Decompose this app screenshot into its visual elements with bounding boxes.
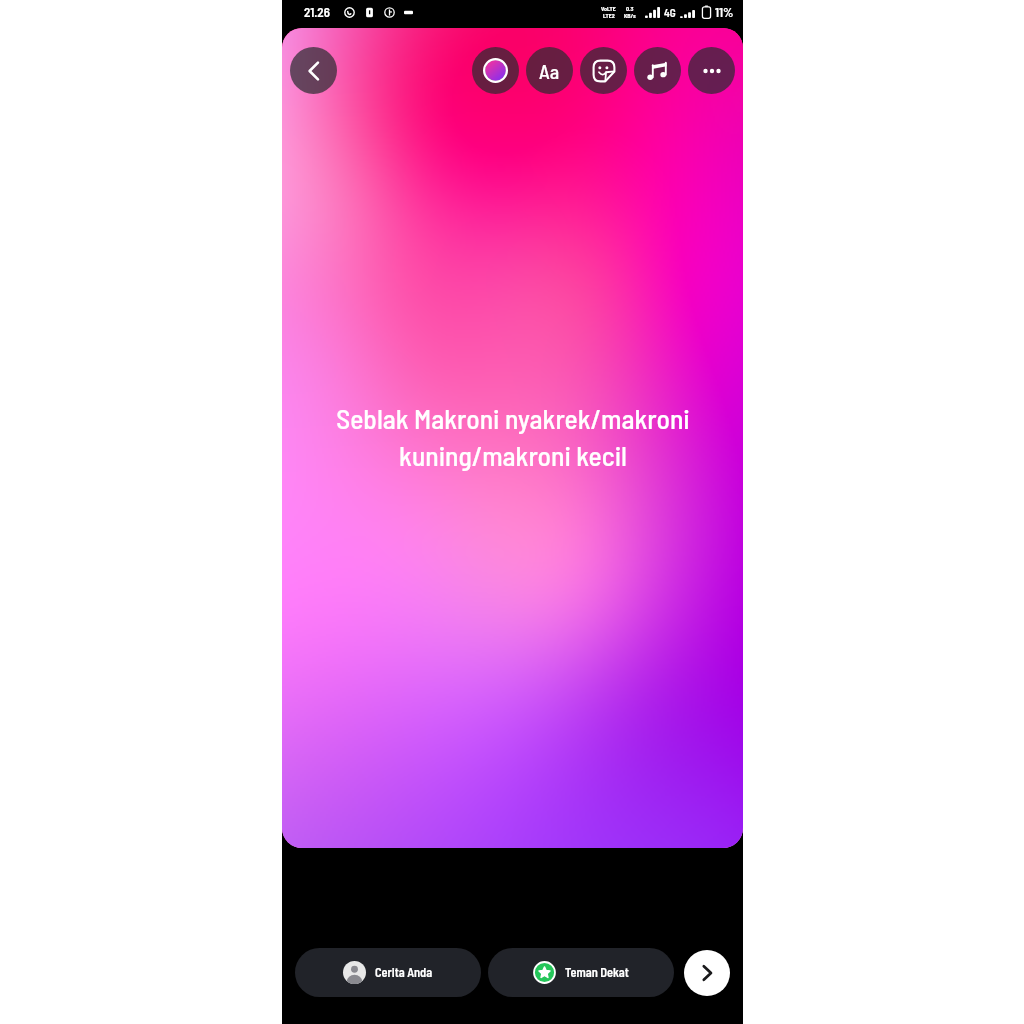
staticText: Aa bbox=[539, 59, 560, 83]
button[interactable]: Back bbox=[290, 47, 337, 94]
staticText: LTE2 bbox=[603, 12, 615, 19]
staticText: Seblak Makroni nyakrek/makroni kuning/ma… bbox=[313, 401, 713, 471]
button[interactable]: Sticker bbox=[580, 47, 627, 94]
button[interactable]: Text bbox=[526, 47, 573, 94]
staticText: Teman Dekat bbox=[565, 965, 629, 980]
button[interactable]: Next bbox=[684, 950, 730, 996]
staticText: 21.26 bbox=[304, 4, 330, 20]
button[interactable]: More options bbox=[688, 47, 735, 94]
button[interactable]: Cerita Anda bbox=[295, 948, 481, 997]
button[interactable]: Color picker bbox=[472, 47, 519, 94]
button[interactable]: Music bbox=[634, 47, 681, 94]
staticText: 11% bbox=[715, 4, 734, 20]
staticText: 0.3 bbox=[626, 5, 634, 12]
staticText: Cerita Anda bbox=[375, 965, 433, 980]
staticText: VoLTE bbox=[601, 5, 616, 12]
button[interactable]: Teman Dekat bbox=[488, 948, 674, 997]
staticText: KB/s bbox=[624, 12, 636, 19]
staticText: 4G bbox=[664, 6, 676, 19]
